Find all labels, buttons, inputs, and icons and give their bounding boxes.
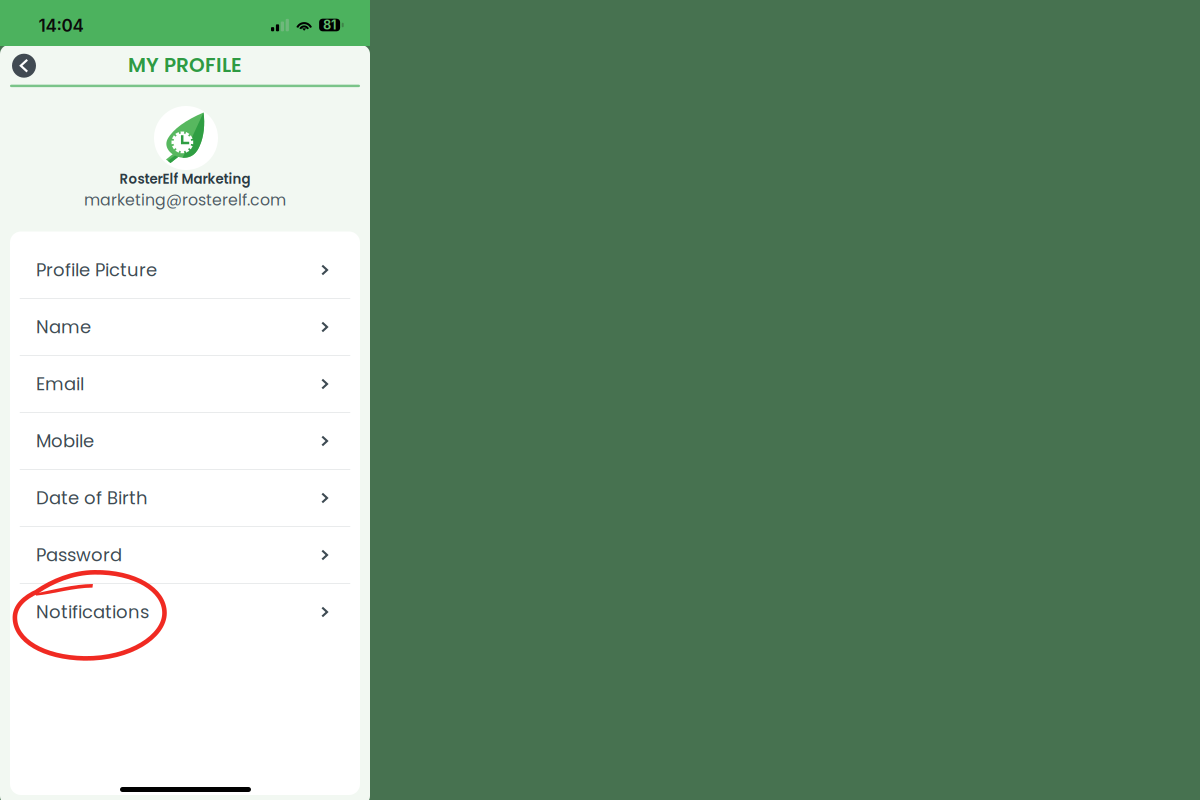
button[interactable]: Email [10, 356, 360, 412]
button[interactable]: Name [10, 299, 360, 355]
staticText: 14:04 [38, 15, 83, 36]
staticText: Name [36, 314, 91, 340]
button[interactable]: Back [7, 49, 41, 83]
button[interactable]: Mobile [10, 413, 360, 469]
staticText: Profile Picture [36, 257, 157, 283]
staticText: Email [36, 371, 84, 397]
staticText: Password [36, 542, 122, 568]
staticText: MY PROFILE [128, 51, 242, 79]
button[interactable]: Date of Birth [10, 470, 360, 526]
button[interactable]: Password [10, 527, 360, 583]
staticText: Notifications [36, 599, 149, 625]
button[interactable]: Notifications [10, 584, 360, 640]
button[interactable]: Profile Picture [10, 242, 360, 298]
staticText: marketing@rosterelf.com [84, 189, 286, 211]
staticText: 81 [323, 17, 336, 33]
staticText: Date of Birth [36, 485, 148, 511]
staticText: RosterElf Marketing [119, 170, 250, 188]
staticText: Mobile [36, 428, 94, 454]
